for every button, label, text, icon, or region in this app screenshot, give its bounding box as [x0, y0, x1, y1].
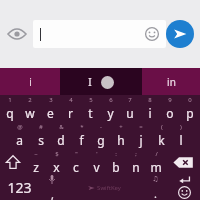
button[interactable]: Comma and voice input: [38, 175, 66, 200]
staticText: SwiftKey: [97, 184, 121, 192]
staticText: 3: [49, 96, 53, 104]
staticText: 4: [69, 96, 73, 104]
button[interactable]: @: [9, 122, 30, 149]
staticText: q: [6, 105, 14, 121]
staticText: +: [119, 123, 123, 131]
staticText: o: [166, 105, 174, 121]
button[interactable]: Emoji and enter: [168, 175, 200, 200]
button[interactable]: /: [146, 149, 166, 175]
staticText: u: [126, 105, 134, 121]
button[interactable]: 1: [0, 95, 20, 122]
button[interactable]: i: [0, 68, 60, 95]
staticText: a: [16, 132, 23, 148]
staticText: ~: [34, 150, 38, 158]
staticText: -: [100, 123, 102, 131]
staticText: 9: [168, 96, 172, 104]
staticText: ': [96, 150, 98, 158]
button[interactable]: Preview: [4, 21, 30, 47]
button[interactable]: :: [106, 149, 126, 175]
staticText: I: [88, 75, 92, 89]
staticText: c: [73, 159, 79, 175]
staticText: y: [107, 105, 114, 121]
button[interactable]: (: [151, 122, 171, 149]
staticText: $: [55, 150, 59, 158]
button[interactable]: 9: [160, 95, 180, 122]
button[interactable]: 0: [180, 95, 200, 122]
button[interactable]: in: [142, 68, 200, 95]
staticText: .: [154, 186, 157, 200]
staticText: i: [29, 75, 32, 89]
staticText: &: [59, 123, 64, 131]
button[interactable]: Period: [142, 175, 168, 200]
staticText: 2: [28, 96, 32, 104]
button[interactable]: Send: [166, 20, 194, 48]
staticText: s: [38, 132, 44, 148]
staticText: 0: [188, 96, 192, 104]
staticText: v: [93, 159, 100, 175]
staticText: @: [17, 123, 23, 131]
button[interactable]: 2: [20, 95, 40, 122]
staticText: 6: [109, 96, 113, 104]
button[interactable]: ;: [126, 149, 146, 175]
button[interactable]: =: [131, 122, 151, 149]
button[interactable]: 7: [120, 95, 140, 122]
staticText: w: [25, 105, 35, 121]
staticText: z: [33, 159, 39, 175]
button[interactable]: 4: [60, 95, 80, 122]
staticText: #: [39, 123, 43, 131]
button[interactable]: ": [66, 149, 86, 175]
button[interactable]: ': [86, 149, 106, 175]
staticText: 123: [7, 178, 32, 197]
staticText: *: [80, 123, 84, 131]
staticText: p: [186, 105, 194, 121]
staticText: ): [180, 123, 182, 131]
staticText: /: [155, 150, 158, 158]
button[interactable]: Space: [66, 175, 142, 200]
staticText: r: [68, 105, 73, 121]
staticText: m: [150, 159, 162, 175]
button[interactable]: $: [46, 149, 66, 175]
staticText: t: [88, 105, 93, 121]
staticText: 8: [148, 96, 152, 104]
button[interactable]: -: [91, 122, 111, 149]
button[interactable]: ~: [26, 149, 46, 175]
staticText: j: [139, 132, 143, 148]
button[interactable]: [60, 68, 142, 95]
staticText: g: [97, 132, 105, 148]
button[interactable]: 8: [140, 95, 160, 122]
staticText: h: [117, 132, 125, 148]
staticText: 5: [89, 96, 93, 104]
staticText: k: [158, 132, 165, 148]
staticText: :: [115, 150, 117, 158]
staticText: =: [139, 123, 143, 131]
button[interactable]: Backspace: [166, 149, 200, 175]
staticText: in: [167, 75, 176, 89]
button[interactable]: *: [71, 122, 91, 149]
button[interactable]: Shift: [0, 149, 26, 175]
button[interactable]: 3: [40, 95, 60, 122]
button[interactable]: Emoji: [143, 25, 161, 43]
staticText: (: [161, 123, 163, 131]
staticText: ;: [135, 150, 137, 158]
staticText: ": [75, 150, 78, 158]
staticText: i: [148, 105, 152, 121]
staticText: e: [47, 105, 54, 121]
staticText: x: [53, 159, 60, 175]
button[interactable]: 6: [100, 95, 120, 122]
staticText: f: [79, 132, 84, 148]
button[interactable]: 5: [80, 95, 100, 122]
staticText: l: [179, 132, 183, 148]
staticText: n: [132, 159, 140, 175]
staticText: ,: [51, 187, 54, 200]
button[interactable]: &: [51, 122, 71, 149]
staticText: d: [57, 132, 65, 148]
staticText: 7: [128, 96, 132, 104]
staticText: ♫: [152, 175, 159, 183]
button[interactable]: +: [111, 122, 131, 149]
staticText: b: [112, 159, 120, 175]
button[interactable]: ): [171, 122, 191, 149]
button[interactable]: Emoji: [33, 20, 166, 48]
button[interactable]: #: [30, 122, 51, 149]
button[interactable]: 123: [0, 175, 38, 200]
staticText: 1: [8, 96, 12, 104]
